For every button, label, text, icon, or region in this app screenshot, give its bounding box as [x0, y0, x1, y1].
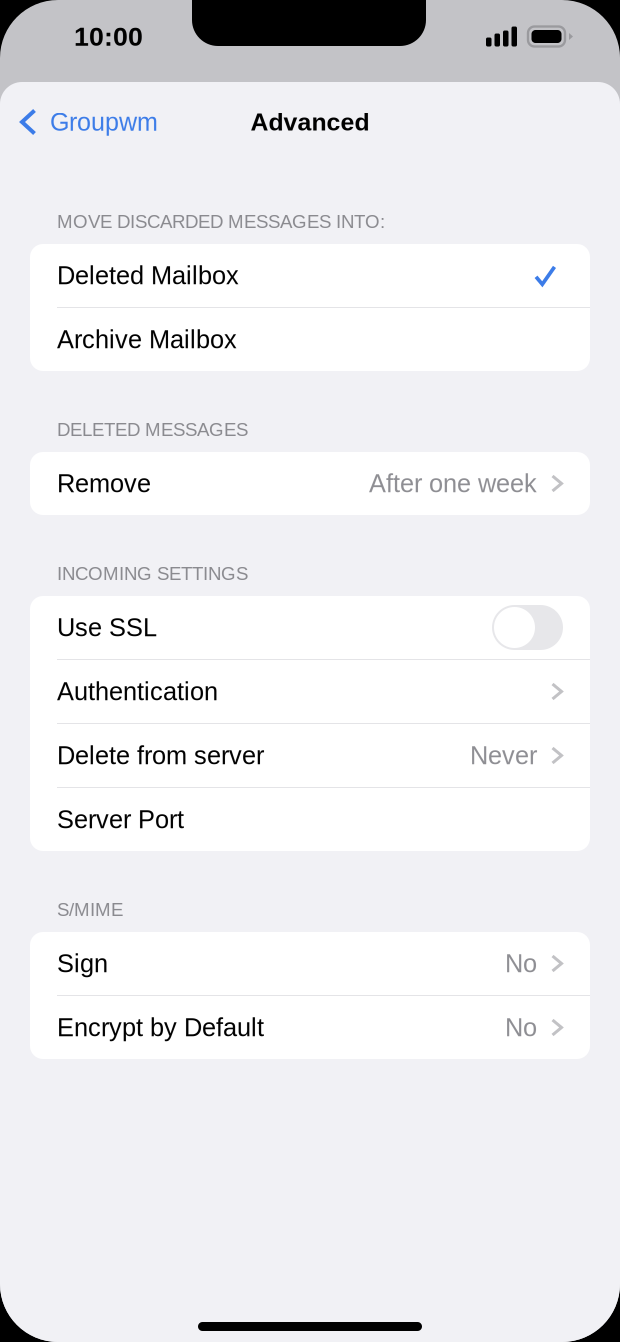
- staticText: Deleted Mailbox: [57, 261, 239, 290]
- staticText: Remove: [57, 469, 151, 498]
- staticText: Authentication: [57, 677, 218, 706]
- button[interactable]: Delete from server: [30, 724, 590, 787]
- button[interactable]: Server Port: [30, 788, 590, 851]
- staticText: Groupwm: [50, 108, 158, 136]
- button[interactable]: Sign: [30, 932, 590, 995]
- staticText: S/MIME: [57, 899, 123, 920]
- staticText: No: [505, 1013, 537, 1042]
- staticText: Use SSL: [57, 613, 157, 642]
- button[interactable]: Use SSL: [30, 596, 590, 659]
- staticText: After one week: [369, 469, 537, 498]
- staticText: Delete from server: [57, 741, 264, 770]
- staticText: Encrypt by Default: [57, 1013, 264, 1042]
- staticText: Advanced: [250, 108, 369, 136]
- staticText: Server Port: [57, 805, 184, 834]
- button[interactable]: Archive Mailbox: [30, 308, 590, 371]
- staticText: 10:00: [74, 22, 143, 51]
- staticText: MOVE DISCARDED MESSAGES INTO:: [57, 211, 385, 232]
- button[interactable]: Remove: [30, 452, 590, 515]
- staticText: Never: [470, 741, 537, 770]
- staticText: No: [505, 949, 537, 978]
- staticText: DELETED MESSAGES: [57, 419, 248, 440]
- button[interactable]: Deleted Mailbox: [30, 244, 590, 307]
- staticText: INCOMING SETTINGS: [57, 563, 248, 584]
- button[interactable]: Encrypt by Default: [30, 996, 590, 1059]
- button[interactable]: Groupwm: [0, 93, 158, 151]
- button[interactable]: Authentication: [30, 660, 590, 723]
- staticText: Sign: [57, 949, 108, 978]
- staticText: Archive Mailbox: [57, 325, 237, 354]
